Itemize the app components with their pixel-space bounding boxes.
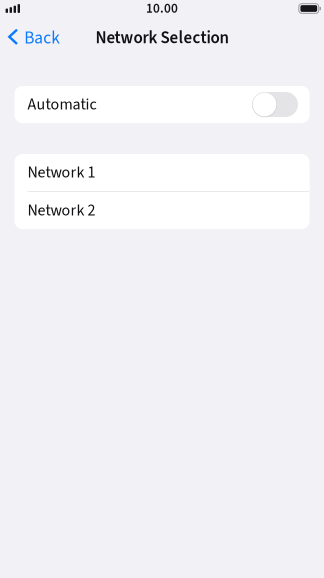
button[interactable]: Network 1 bbox=[14, 154, 309, 191]
staticText: Network 2 bbox=[27, 199, 95, 222]
staticText: Back bbox=[24, 26, 60, 50]
staticText: 10.00 bbox=[146, 0, 178, 18]
staticText: Automatic bbox=[27, 93, 96, 116]
staticText: Network Selection bbox=[95, 26, 228, 50]
button[interactable]: Automatic bbox=[14, 86, 309, 123]
button[interactable]: Network 2 bbox=[14, 192, 309, 229]
button[interactable]: Back bbox=[0, 20, 70, 56]
staticText: Network 1 bbox=[27, 161, 95, 184]
